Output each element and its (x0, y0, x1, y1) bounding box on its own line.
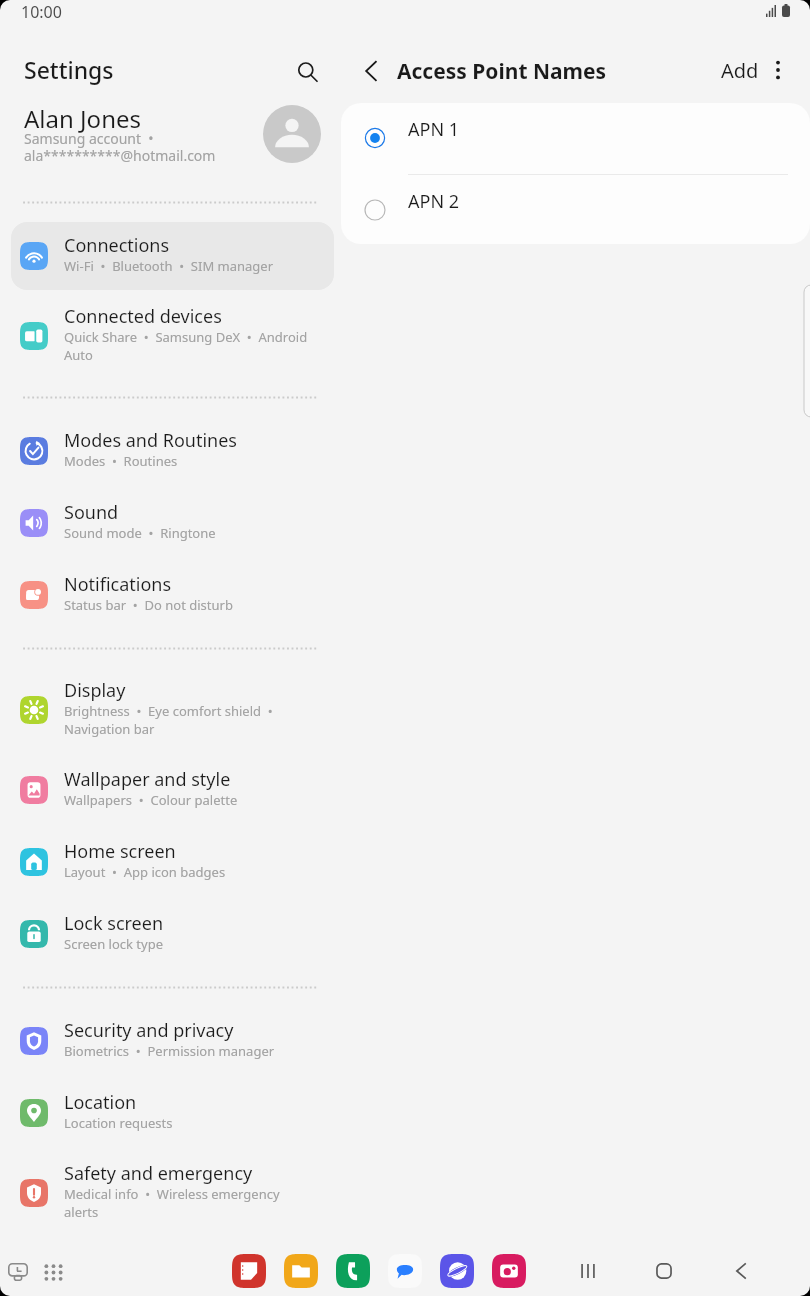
button[interactable] (388, 1254, 422, 1288)
staticText: Location requests (64, 1114, 173, 1132)
staticText: Biometrics • Permission manager (64, 1042, 275, 1060)
button[interactable]: Modes and Routines (11, 417, 334, 485)
button[interactable]: Connections (11, 222, 334, 290)
button[interactable]: More options (756, 48, 800, 92)
staticText: Add (721, 57, 759, 84)
button[interactable] (284, 1254, 318, 1288)
staticText: Connected devices (64, 304, 222, 329)
staticText: Connections (64, 233, 170, 258)
staticText: APN 1 (408, 117, 460, 142)
staticText: Screen lock type (64, 935, 163, 953)
button[interactable]: Home (644, 1251, 684, 1291)
staticText: Medical info • Wireless emergency alerts (64, 1185, 280, 1221)
staticText: Modes • Routines (64, 452, 178, 470)
staticText: Quick Share • Samsung DeX • Android Auto (64, 328, 308, 364)
staticText: Home screen (64, 839, 176, 864)
staticText: Sound mode • Ringtone (64, 524, 216, 542)
button[interactable]: Safety and emergency (11, 1151, 334, 1235)
button[interactable]: Notifications (11, 561, 334, 629)
button[interactable]: Add (711, 48, 769, 92)
button[interactable]: Search (286, 50, 330, 94)
staticText: Modes and Routines (64, 428, 237, 453)
button[interactable] (440, 1254, 474, 1288)
button[interactable]: Back (349, 49, 393, 93)
button[interactable]: Security and privacy (11, 1007, 334, 1075)
button[interactable]: Home screen (11, 828, 334, 896)
staticText: Samsung account • ala**********@hotmail.… (24, 129, 216, 165)
button[interactable] (232, 1254, 266, 1288)
button[interactable]: Location (11, 1079, 334, 1147)
button[interactable]: Display (11, 668, 334, 752)
button[interactable]: Wallpaper and style (11, 756, 334, 824)
staticText: Sound (64, 500, 119, 525)
staticText: Safety and emergency (64, 1161, 253, 1186)
button[interactable]: APN 2 (341, 175, 810, 244)
staticText: Security and privacy (64, 1018, 234, 1043)
button[interactable]: Screen time (0, 1252, 36, 1292)
button[interactable]: APN 1 (341, 103, 810, 173)
staticText: Display (64, 678, 126, 703)
staticText: Settings (24, 54, 114, 85)
staticText: Alan Jones (24, 102, 141, 135)
button[interactable] (336, 1254, 370, 1288)
button[interactable] (492, 1254, 526, 1288)
staticText: Notifications (64, 572, 172, 597)
staticText: Wi-Fi • Bluetooth • SIM manager (64, 257, 274, 275)
button[interactable]: Apps (35, 1252, 71, 1292)
staticText: Lock screen (64, 911, 164, 936)
button[interactable]: Back (721, 1251, 761, 1291)
button[interactable]: Sound (11, 489, 334, 557)
staticText: Brightness • Eye comfort shield • Naviga… (64, 702, 273, 738)
staticText: 10:00 (21, 1, 62, 23)
button[interactable]: Alan Jones (0, 96, 341, 176)
button[interactable]: Connected devices (11, 294, 334, 378)
staticText: Wallpaper and style (64, 767, 231, 792)
staticText: Access Point Names (397, 57, 607, 86)
staticText: APN 2 (408, 189, 460, 214)
staticText: Layout • App icon badges (64, 863, 226, 881)
staticText: Location (64, 1090, 137, 1115)
button[interactable]: Lock screen (11, 900, 334, 968)
button[interactable]: Recents (568, 1251, 608, 1291)
staticText: Wallpapers • Colour palette (64, 791, 238, 809)
staticText: Status bar • Do not disturb (64, 596, 233, 614)
